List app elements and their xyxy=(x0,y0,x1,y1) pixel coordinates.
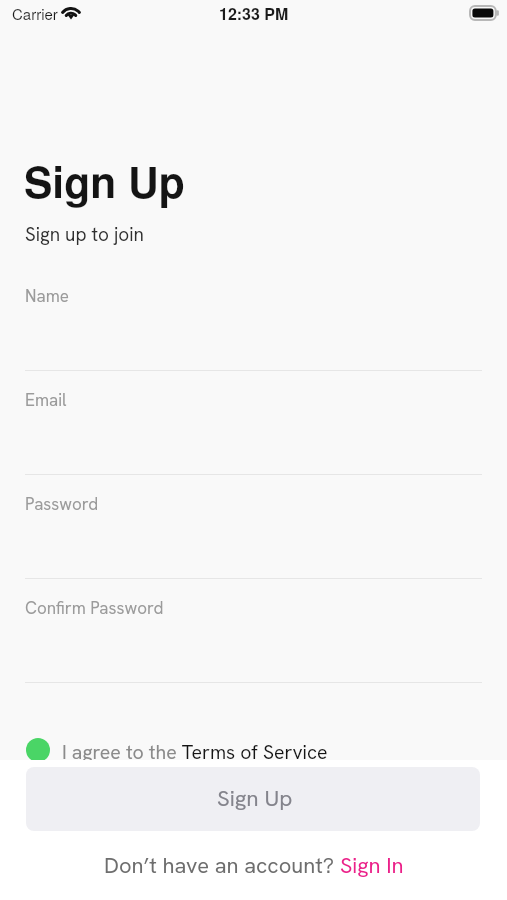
button[interactable]: Agree to terms checkbox xyxy=(26,738,507,763)
staticText: Don’t have an account? xyxy=(104,851,335,880)
button[interactable]: Sign In xyxy=(340,851,404,880)
staticText: Sign Up xyxy=(217,783,293,812)
staticText: Sign up to join xyxy=(25,222,144,247)
staticText: 12:33 PM xyxy=(219,2,289,25)
other: Agree to terms checkbox xyxy=(26,738,50,762)
staticText: I agree to the Terms of Service xyxy=(62,739,328,764)
button[interactable]: Sign Up xyxy=(26,767,480,831)
other: Battery full xyxy=(470,6,499,20)
staticText: Confirm Password xyxy=(25,597,164,619)
staticText: Email xyxy=(25,389,67,411)
staticText: Name xyxy=(25,285,69,307)
staticText: Carrier xyxy=(12,3,58,24)
staticText: Password xyxy=(25,493,99,515)
staticText: Sign Up xyxy=(24,150,185,211)
